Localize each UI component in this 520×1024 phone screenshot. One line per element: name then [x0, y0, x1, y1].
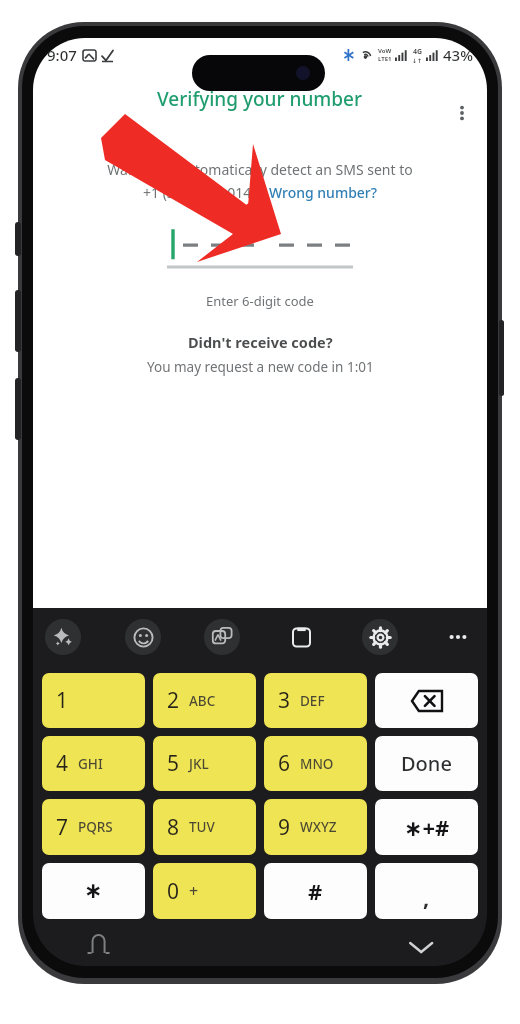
- staticText: ABC: [189, 692, 216, 710]
- button[interactable]: Clipboard: [283, 619, 319, 655]
- button[interactable]: [167, 224, 353, 270]
- staticText: 4: [56, 749, 69, 778]
- staticText: +: [189, 880, 199, 902]
- button[interactable]: ∗: [42, 863, 145, 919]
- staticText: JKL: [189, 755, 209, 773]
- staticText: GHI: [78, 755, 103, 773]
- staticText: ∗+#: [404, 812, 450, 842]
- staticText: +1 (307) 555-0141.: [143, 183, 264, 202]
- staticText: ,: [423, 882, 430, 912]
- staticText: WXYZ: [300, 818, 337, 836]
- staticText: LTE1: [378, 55, 392, 63]
- staticText: 2: [167, 686, 180, 715]
- button[interactable]: Assistant: [45, 619, 81, 655]
- button[interactable]: 8: [153, 799, 256, 855]
- button[interactable]: More: [441, 620, 475, 654]
- button[interactable]: 2: [153, 673, 256, 728]
- staticText: 43%: [443, 45, 473, 65]
- staticText: Enter 6-digit code: [206, 292, 314, 310]
- staticText: 9:07: [47, 45, 77, 65]
- staticText: ∗: [84, 878, 103, 904]
- button[interactable]: 7: [42, 799, 145, 855]
- staticText: You may request a new code in 1:01: [147, 358, 374, 376]
- button[interactable]: Translate: [204, 619, 240, 655]
- button[interactable]: ,: [375, 863, 478, 919]
- button[interactable]: 4: [42, 736, 145, 791]
- staticText: DEF: [300, 692, 325, 710]
- staticText: Verifying your number: [157, 86, 363, 112]
- staticText: 3: [278, 686, 291, 715]
- staticText: 5: [167, 749, 180, 778]
- button[interactable]: More options: [445, 96, 479, 130]
- staticText: TUV: [189, 818, 215, 836]
- button[interactable]: 6: [264, 736, 367, 791]
- staticText: 8: [167, 813, 180, 842]
- button[interactable]: Settings: [362, 619, 398, 655]
- staticText: 6: [278, 749, 291, 778]
- button[interactable]: Wrong number?: [269, 183, 378, 202]
- button[interactable]: 3: [264, 673, 367, 728]
- staticText: #: [308, 876, 323, 906]
- staticText: Done: [401, 750, 452, 777]
- button[interactable]: Backspace: [375, 673, 478, 728]
- staticText: Waiting to automatically detect an SMS s…: [55, 160, 465, 179]
- staticText: 9: [278, 813, 291, 842]
- button[interactable]: Done: [375, 736, 478, 791]
- button[interactable]: 1: [42, 673, 145, 728]
- button[interactable]: Emoji: [125, 619, 161, 655]
- staticText: Didn't receive code?: [188, 332, 333, 352]
- staticText: ↓↑: [412, 57, 423, 64]
- staticText: MNO: [300, 755, 334, 773]
- staticText: 0: [167, 877, 180, 906]
- staticText: PQRS: [78, 818, 113, 836]
- button[interactable]: 0: [153, 863, 256, 919]
- button[interactable]: #: [264, 863, 367, 919]
- staticText: VoW: [378, 47, 392, 55]
- staticText: Wrong number?: [269, 183, 378, 202]
- button[interactable]: ∗+#: [375, 799, 478, 855]
- button[interactable]: 9: [264, 799, 367, 855]
- button[interactable]: 5: [153, 736, 256, 791]
- staticText: 1: [56, 686, 69, 715]
- staticText: 4G: [413, 47, 423, 57]
- button[interactable]: Didn't receive code?: [188, 332, 333, 352]
- staticText: 7: [56, 813, 69, 842]
